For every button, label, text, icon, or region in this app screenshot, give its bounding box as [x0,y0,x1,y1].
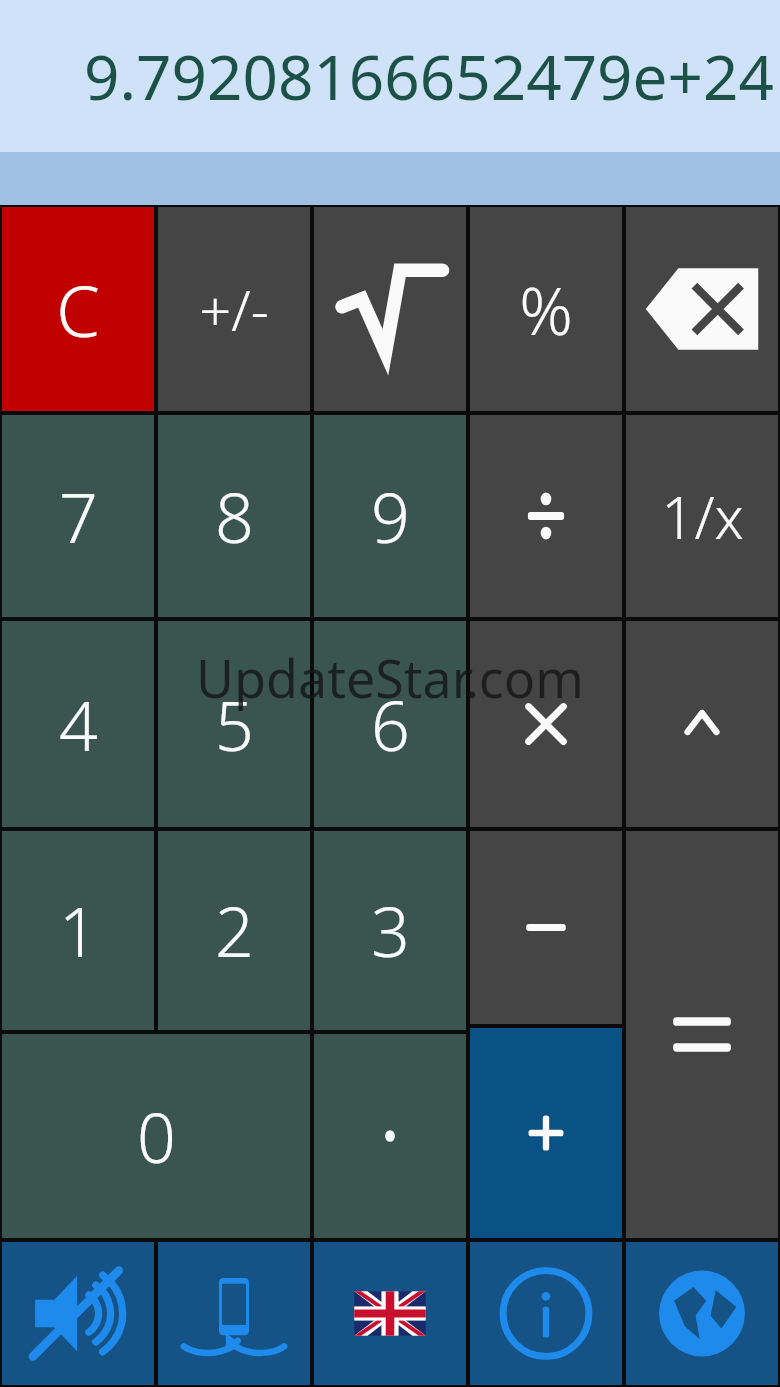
button[interactable]: Info [470,1242,622,1385]
button[interactable]: Equals [626,831,778,1238]
button[interactable]: 5 [158,621,310,827]
staticText: 9.79208166652479e+24 [84,34,774,118]
button[interactable]: 9 [314,415,466,617]
button[interactable]: % [470,207,622,411]
staticText: C [56,262,100,357]
staticText: +/- [199,271,269,347]
button[interactable]: 0 [2,1034,310,1238]
button[interactable]: Language [314,1242,466,1385]
button[interactable]: 3 [314,831,466,1030]
staticText: 5 [215,678,254,771]
button[interactable]: Power [626,621,778,827]
button[interactable]: Add [470,1028,622,1238]
button[interactable]: Divide [470,415,622,617]
button[interactable]: 4 [2,621,154,827]
button[interactable]: 1 [2,831,154,1030]
staticText: % [519,264,573,354]
button[interactable]: C [2,207,154,411]
button[interactable]: Web [626,1242,778,1385]
staticText: 7 [59,470,98,563]
staticText: 6 [371,678,410,771]
button[interactable]: 6 [314,621,466,827]
staticText: 8 [215,470,254,563]
staticText: 4 [59,678,98,771]
staticText: 1 [59,884,98,977]
button[interactable]: Rotate screen [158,1242,310,1385]
button[interactable]: 2 [158,831,310,1030]
staticText: 3 [371,884,410,977]
button[interactable]: 1/x [626,415,778,617]
button[interactable]: 8 [158,415,310,617]
button[interactable]: +/- [158,207,310,411]
button[interactable]: Backspace [626,207,778,411]
staticText: 0 [137,1090,176,1183]
staticText: 2 [215,884,254,977]
button[interactable]: 7 [2,415,154,617]
staticText: 9 [371,470,410,563]
button[interactable]: Decimal point [314,1034,466,1238]
button[interactable]: Subtract [470,831,622,1024]
button[interactable]: Multiply [470,621,622,827]
staticText: 1/x [661,477,744,556]
staticText: UpdateStar.com [196,642,584,713]
button[interactable]: Square root [314,207,466,411]
button[interactable]: Mute sound [2,1242,154,1385]
